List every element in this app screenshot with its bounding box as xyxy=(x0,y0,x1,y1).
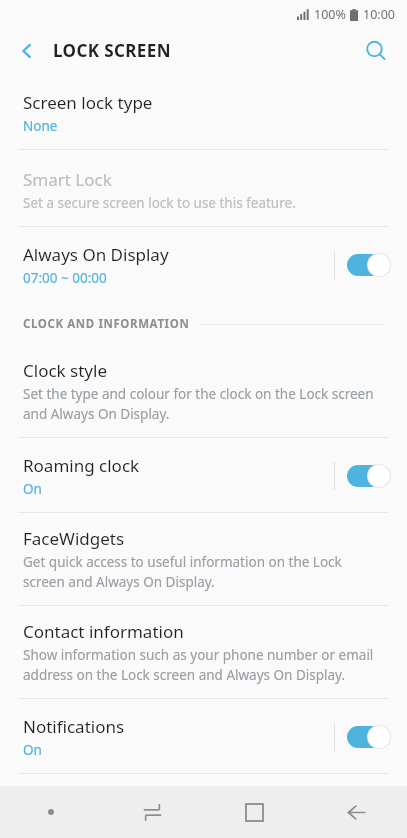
button[interactable]: Back xyxy=(10,34,44,68)
staticText: Set the type and colour for the clock on… xyxy=(23,385,374,423)
button[interactable]: Notifications toggle xyxy=(347,724,393,750)
button[interactable]: Clock style xyxy=(0,345,407,437)
staticText: On xyxy=(23,480,42,498)
staticText: LOCK SCREEN xyxy=(53,39,171,62)
staticText: On xyxy=(23,741,42,759)
button[interactable]: Always On Display toggle xyxy=(347,252,393,278)
staticText: Always On Display xyxy=(23,243,169,266)
button[interactable]: Search xyxy=(357,32,395,70)
button[interactable]: Back xyxy=(305,786,407,838)
button[interactable]: Smart Lock xyxy=(0,150,407,226)
staticText: 100% xyxy=(314,6,346,23)
staticText: Roaming clock xyxy=(23,454,140,477)
staticText: FaceWidgets xyxy=(23,527,125,550)
staticText: Show information such as your phone numb… xyxy=(23,646,374,684)
button[interactable]: Screen lock type xyxy=(0,73,407,149)
button[interactable]: Contact information xyxy=(0,606,407,698)
staticText: Notifications xyxy=(23,715,125,738)
button[interactable]: Roaming clock xyxy=(0,438,407,512)
button[interactable]: Recents xyxy=(101,786,203,838)
staticText: 10:00 xyxy=(363,6,395,23)
staticText: Contact information xyxy=(23,620,184,643)
staticText: CLOCK AND INFORMATION xyxy=(23,316,190,332)
staticText: 07:00 ~ 00:00 xyxy=(23,269,107,287)
staticText: Get quick access to useful information o… xyxy=(23,553,342,591)
button[interactable]: Notifications xyxy=(0,699,407,773)
staticText: Screen lock type xyxy=(23,91,153,114)
staticText: None xyxy=(23,117,58,135)
button[interactable]: FaceWidgets xyxy=(0,513,407,605)
button[interactable]: Roaming clock toggle xyxy=(347,463,393,489)
staticText: Set a secure screen lock to use this fea… xyxy=(23,194,296,212)
staticText: Smart Lock xyxy=(23,168,112,191)
staticText: Clock style xyxy=(23,359,107,382)
button[interactable]: Always On Display xyxy=(0,227,407,303)
button[interactable]: Home xyxy=(203,786,305,838)
